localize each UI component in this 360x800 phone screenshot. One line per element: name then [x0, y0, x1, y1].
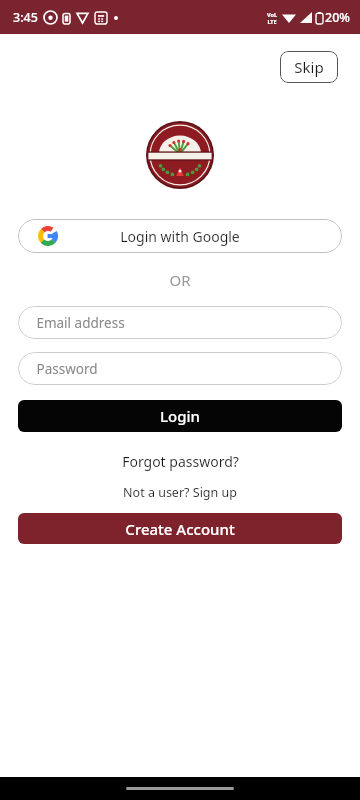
staticText: Not a user? Sign up — [123, 484, 237, 501]
staticText: Password — [36, 360, 98, 378]
button[interactable]: Password — [18, 352, 342, 385]
staticText: 20% — [325, 9, 350, 26]
button[interactable]: Create Account — [18, 513, 342, 544]
button[interactable]: Email address — [18, 306, 342, 339]
button[interactable]: Login — [18, 400, 342, 432]
button[interactable]: Login with Google — [18, 219, 342, 253]
staticText: VoL — [267, 11, 277, 18]
button[interactable]: Forgot password? — [114, 450, 247, 473]
staticText: Login — [160, 406, 200, 426]
staticText: Skip — [294, 57, 324, 77]
staticText: LTE — [267, 18, 277, 25]
staticText: Create Account — [125, 519, 235, 539]
staticText: Forgot password? — [122, 452, 239, 471]
staticText: Login with Google — [120, 227, 240, 246]
staticText: 3:45 — [13, 9, 38, 26]
staticText: OR — [169, 270, 191, 290]
button[interactable]: Not a user? Sign up — [115, 482, 245, 503]
button[interactable]: Skip — [280, 51, 338, 83]
staticText: Email address — [36, 314, 125, 332]
